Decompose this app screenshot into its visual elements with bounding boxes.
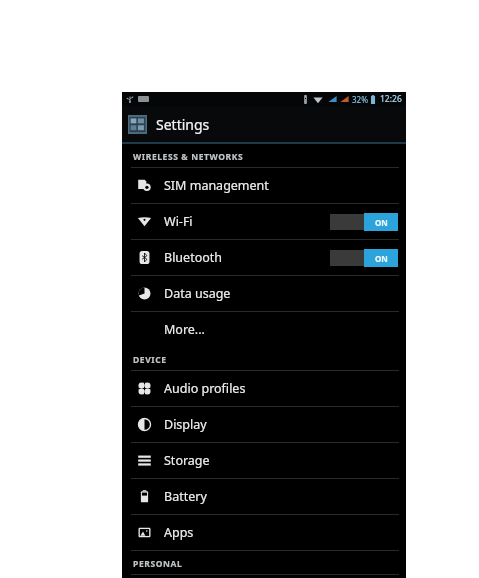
staticText: Wi-Fi [164,213,193,230]
staticText: Settings [156,115,210,134]
staticText: DEVICE [133,354,167,366]
staticText: ON [375,217,388,228]
other: Settings app icon [128,115,147,134]
staticText: 32% [352,94,368,105]
staticText: Storage [164,452,210,469]
staticText: Bluetooth [164,249,223,266]
button[interactable]: Toggle ON [330,249,398,267]
staticText: 12:26 [380,93,402,105]
staticText: SIM management [164,177,269,194]
staticText: WIRELESS & NETWORKS [133,151,244,163]
button[interactable]: More... [122,312,406,347]
button[interactable]: Toggle ON [330,213,398,231]
button[interactable]: Data usage [122,276,406,311]
button[interactable]: SIM management [122,168,406,203]
staticText: More... [164,321,205,338]
staticText: PERSONAL [133,558,183,570]
staticText: Apps [164,524,194,541]
button[interactable]: Apps [122,515,406,550]
button[interactable]: Display [122,407,406,442]
staticText: Data usage [164,285,231,302]
staticText: Display [164,416,207,433]
staticText: Battery [164,488,207,505]
staticText: Audio profiles [164,380,246,397]
button[interactable]: Storage [122,443,406,478]
staticText: ON [375,253,388,264]
button[interactable]: Battery [122,479,406,514]
button[interactable]: Settings app icon [122,106,406,142]
button[interactable]: Audio profiles [122,371,406,406]
button[interactable]: Bluetooth [122,240,406,275]
button[interactable]: Wi-Fi [122,204,406,239]
